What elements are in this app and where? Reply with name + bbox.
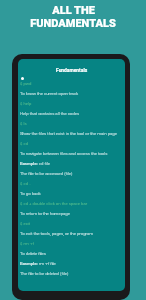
staticText: ALL THE (52, 4, 95, 17)
staticText: To delete files (20, 251, 46, 261)
staticText: To go back (20, 191, 41, 201)
staticText: To return to the homepage (20, 211, 70, 221)
staticText: The file to be accessed (file) (20, 171, 73, 181)
staticText: To know the current open track (20, 91, 79, 101)
staticText: Help that contains all the codes (20, 111, 80, 121)
staticText: FUNDAMENTALS (30, 17, 116, 30)
staticText: Example: rm -rf file (20, 261, 56, 271)
button[interactable]: Fundamentals (18, 59, 125, 80)
staticText: $ pwd (20, 81, 32, 91)
staticText: To exit the tools, pages, or the program (20, 231, 94, 241)
staticText: $ exit (20, 221, 31, 231)
staticText: Fundamentals (56, 67, 88, 73)
staticText: Example: cd file (20, 161, 50, 171)
staticText: Show the files that exist in the tool or… (20, 131, 117, 141)
staticText: $ ls (20, 121, 27, 131)
staticText: To navigate between files and access the… (20, 151, 108, 161)
staticText: $ cd .. (20, 181, 32, 191)
staticText: $ cd + double click on the space bar (20, 201, 88, 211)
staticText: The file to be deleted (file) (20, 271, 69, 281)
staticText: $ help (20, 101, 32, 111)
staticText: $ rm -rf (20, 241, 34, 251)
staticText: $ cd (20, 141, 29, 151)
